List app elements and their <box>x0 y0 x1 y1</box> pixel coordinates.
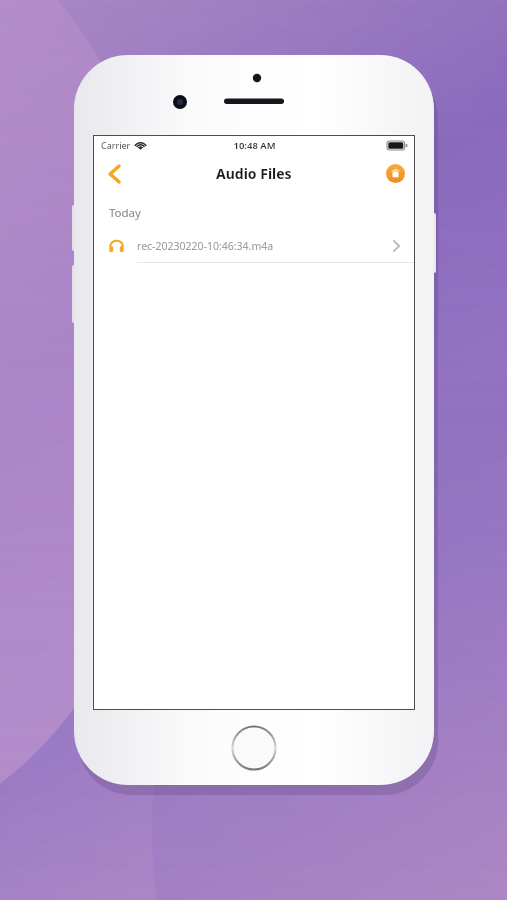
button[interactable]: Delete <box>386 164 405 183</box>
staticText: 10:48 AM <box>233 139 276 152</box>
staticText: Today <box>109 205 141 221</box>
staticText: Carrier <box>101 139 131 151</box>
staticText: rec-20230220-10:46:34.m4a <box>137 239 393 253</box>
staticText: Audio Files <box>216 164 292 183</box>
button[interactable]: rec-20230220-10:46:34.m4a <box>93 230 415 262</box>
button[interactable]: Back <box>97 157 131 191</box>
